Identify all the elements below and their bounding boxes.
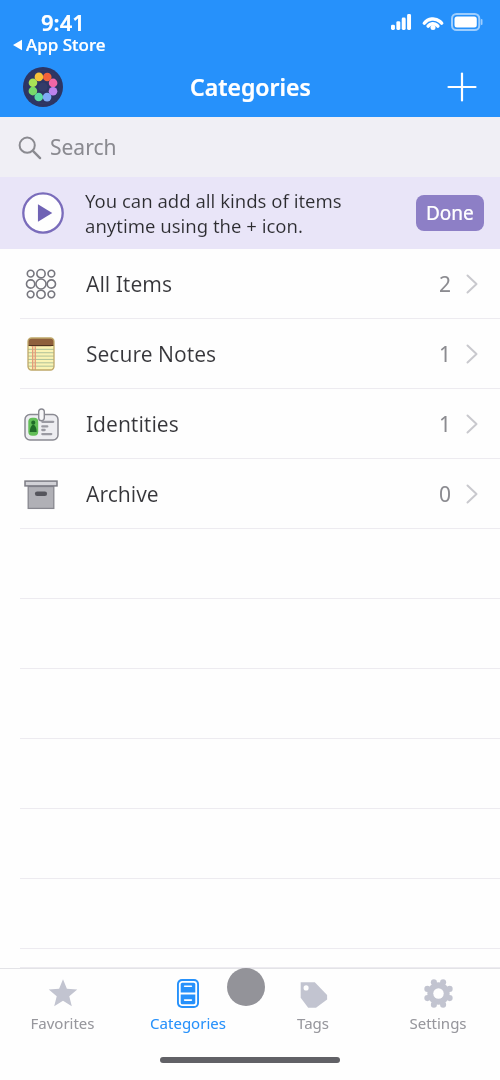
- button[interactable]: Done: [416, 195, 484, 231]
- staticText: All Items: [86, 270, 172, 299]
- staticText: Secure Notes: [86, 340, 217, 369]
- button[interactable]: All Items: [0, 249, 500, 319]
- staticText: Search: [50, 133, 117, 162]
- staticText: Categories: [150, 1013, 226, 1033]
- staticText: App Store: [26, 33, 106, 56]
- staticText: 2: [439, 270, 452, 299]
- staticText: 9:41: [41, 7, 85, 37]
- staticText: 1: [439, 410, 452, 439]
- button[interactable]: Secure Notes: [0, 319, 500, 389]
- button[interactable]: Tags: [250, 968, 375, 1033]
- staticText: Done: [426, 200, 474, 226]
- button[interactable]: Categories: [125, 968, 250, 1033]
- staticText: anytime using the + icon.: [85, 213, 303, 238]
- button[interactable]: Settings: [375, 968, 500, 1033]
- button[interactable]: Add: [440, 65, 484, 109]
- staticText: Archive: [86, 480, 159, 509]
- button[interactable]: Search: [0, 117, 500, 177]
- staticText: Identities: [86, 410, 179, 439]
- staticText: 1: [439, 340, 452, 369]
- button[interactable]: Profile: [227, 968, 265, 1006]
- button[interactable]: Favorites: [0, 968, 125, 1033]
- staticText: Settings: [409, 1013, 467, 1033]
- staticText: You can add all kinds of items: [85, 188, 342, 213]
- staticText: Tags: [297, 1013, 329, 1033]
- button[interactable]: Identities: [0, 389, 500, 459]
- staticText: 0: [439, 480, 452, 509]
- staticText: Favorites: [30, 1013, 95, 1033]
- button[interactable]: Account: [21, 65, 65, 109]
- staticText: Categories: [190, 71, 311, 102]
- button[interactable]: Archive: [0, 459, 500, 529]
